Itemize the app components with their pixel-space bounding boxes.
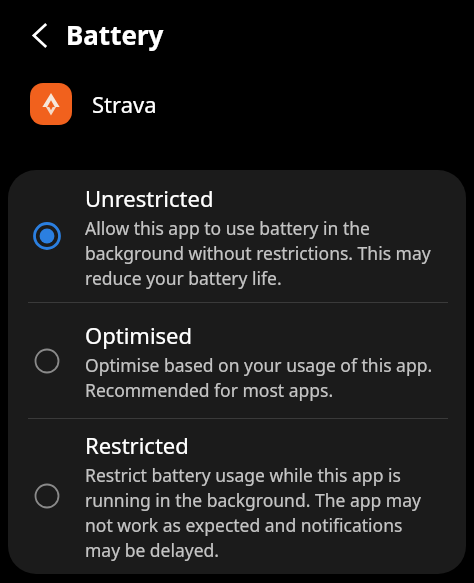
- staticText: Unrestricted: [85, 183, 214, 213]
- button[interactable]: Back: [18, 14, 62, 56]
- staticText: Strava: [92, 89, 157, 119]
- button[interactable]: Unrestricted: [8, 170, 466, 302]
- button[interactable]: Optimised: [8, 303, 466, 418]
- staticText: Restricted: [85, 430, 189, 460]
- staticText: Battery: [66, 17, 164, 52]
- staticText: Optimised: [85, 320, 193, 350]
- button[interactable]: Restricted: [8, 419, 466, 573]
- staticText: Restrict battery usage while this app is…: [85, 463, 421, 562]
- staticText: Optimise based on your usage of this app…: [85, 353, 433, 402]
- button[interactable]: Strava: [0, 80, 474, 128]
- staticText: Allow this app to use battery in the bac…: [85, 216, 431, 290]
